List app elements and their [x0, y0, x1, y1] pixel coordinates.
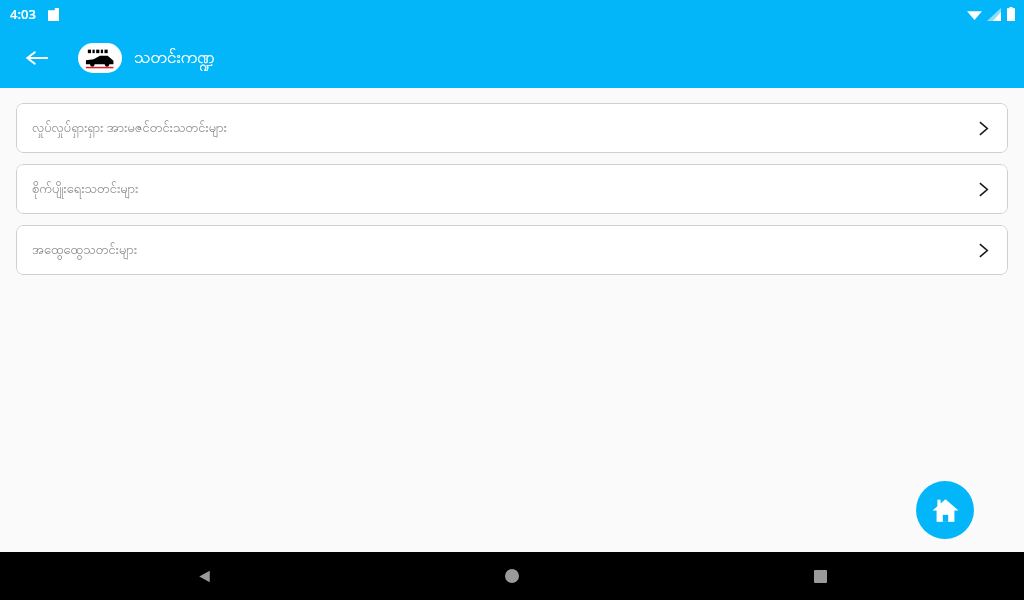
staticText: 4:03	[10, 5, 36, 23]
button[interactable]: Home	[916, 481, 974, 539]
staticText: အထွေထွေသတင်းများ	[32, 241, 979, 260]
button[interactable]: Back	[16, 37, 58, 79]
button[interactable]: လှုပ်လှုပ်ရှားရှား အားမဇင်တင်းသတင်းများ	[16, 103, 1008, 153]
button[interactable]: အထွေထွေသတင်းများ	[16, 225, 1008, 275]
staticText: လှုပ်လှုပ်ရှားရှား အားမဇင်တင်းသတင်းများ	[32, 118, 979, 138]
staticText: စိုက်ပျိုးရေးသတင်းများ	[32, 180, 979, 199]
button[interactable]: Recent apps	[796, 552, 844, 600]
button[interactable]: Home	[488, 552, 536, 600]
button[interactable]: Back	[180, 552, 228, 600]
button[interactable]: စိုက်ပျိုးရေးသတင်းများ	[16, 164, 1008, 214]
staticText: သတင်းကဏ္ဍ	[134, 46, 215, 71]
